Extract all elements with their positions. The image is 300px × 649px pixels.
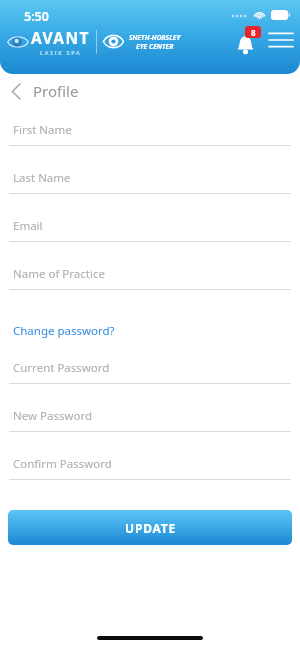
button[interactable]: Current Password [0,353,300,401]
staticText: 5:50 [24,8,49,25]
button[interactable]: Notifications, 8 unread [230,26,260,54]
button[interactable]: UPDATE [8,510,292,545]
staticText: Confirm Password [13,456,112,472]
button[interactable]: Last Name [0,163,300,211]
button[interactable]: First Name [0,115,300,163]
staticText: Name of Practice [13,266,105,282]
staticText: First Name [13,122,72,138]
button[interactable]: Profile [0,74,300,108]
staticText: Email [13,218,43,234]
staticText: Last Name [13,170,71,186]
staticText: LASIK SPA [40,49,82,56]
staticText: New Password [13,408,93,424]
button[interactable]: Confirm Password [0,449,300,497]
staticText: Change password? [13,323,115,339]
button[interactable]: Email [0,211,300,259]
staticText: 8 [251,27,256,38]
button[interactable]: Name of Practice [0,259,300,307]
button[interactable]: Change password? [12,320,116,342]
staticText: Current Password [13,360,110,376]
staticText: Profile [33,81,79,101]
staticText: SHETH-HORSLEY [129,33,181,42]
staticText: AVANT [31,27,90,48]
button[interactable]: New Password [0,401,300,449]
staticText: UPDATE [125,520,176,536]
button[interactable]: Menu [269,30,293,50]
staticText: EYE CENTER [136,42,174,51]
